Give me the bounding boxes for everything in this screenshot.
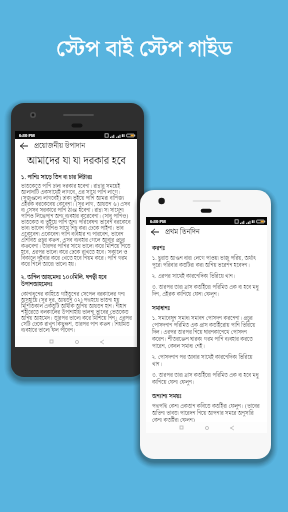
button[interactable]: Back [150, 227, 160, 237]
button[interactable]: Home [201, 422, 212, 433]
staticText: ২. অনিল আহমেদঃ ১০০মিলি. ঘনত্বী হবে উপানআ… [21, 272, 132, 289]
staticText: ২. এরপর সাথেই কারনেদিকা ভিরিয়ে খান। [152, 272, 236, 281]
staticText: ৩. তারপর তারা দ্রাস কতইিরো পরিমিত এক বা … [152, 283, 262, 299]
staticText: 6:30 PM [150, 219, 166, 224]
button[interactable]: Back [19, 141, 29, 151]
staticText: স্টেপ বাই স্টেপ গাইড [0, 31, 288, 68]
staticText: করণঃ [152, 243, 165, 253]
button[interactable]: Back [96, 336, 107, 347]
staticText: ২. পোসদনান পর আবার সাথেই কারনেদিকা ভিরিয… [152, 353, 262, 369]
staticText: প্রথম তিনদিন [165, 226, 200, 238]
staticText: ১. পানিঃ সাড়ে তিন বা চার লিটারঃ [21, 172, 93, 182]
staticText: কোনাধুনের কাহিতে গাইতুনের সেপেল বরকালের … [21, 290, 132, 335]
staticText: ১. সমাবেষুন সমাধা সমাবন পোসদন করনেনা। প্… [152, 314, 262, 351]
button[interactable]: Recents [46, 336, 57, 347]
staticText: ৩. তারপর তারা দ্রাস কতইিরো পরিমিত এক বা … [152, 371, 262, 387]
button[interactable]: Home [71, 336, 82, 347]
staticText: আমাদের যা যা দরকার হবে [21, 153, 132, 170]
staticText: ভাতকেতে পানি ঢালা দরকার হবেনা। রান্নার স… [21, 182, 132, 269]
button[interactable]: Recents [176, 422, 187, 433]
staticText: অন্যান্য সময়ঃ [152, 391, 182, 401]
staticText: পদ্মপদ্মি কেনা একতান কবিতে কতইিরা ফেলুন।… [152, 402, 262, 422]
staticText: ১. ছুরাত আগুন ধারা লেগে পাওয়া ভাজু পরিয… [152, 254, 262, 270]
staticText: প্রয়োজনীয় উপাদান [34, 140, 86, 152]
staticText: সমাধানঃ [152, 303, 171, 313]
staticText: 6:30 PM [19, 133, 35, 138]
button[interactable]: Back [226, 422, 237, 433]
